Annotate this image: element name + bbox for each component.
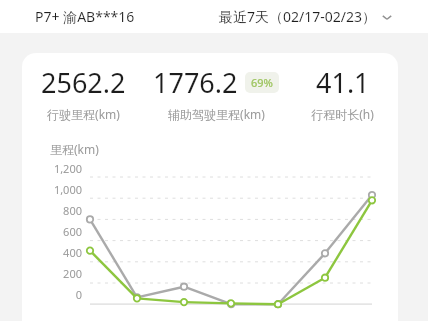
staticText: 400 bbox=[63, 245, 82, 260]
staticText: 1,000 bbox=[53, 182, 82, 197]
staticText: 里程(km) bbox=[50, 141, 99, 157]
staticText: 800 bbox=[63, 203, 82, 218]
button[interactable]: 1776.2 bbox=[145, 64, 287, 122]
staticText: 0 bbox=[75, 287, 82, 302]
staticText: 辅助驾驶里程(km) bbox=[168, 106, 265, 122]
button[interactable]: P7+ 渝AB***16 bbox=[35, 7, 135, 26]
staticText: 69% bbox=[251, 75, 273, 90]
button[interactable]: 41.1 bbox=[287, 64, 398, 122]
button[interactable]: 最近7天（02/17-02/23） bbox=[219, 7, 428, 26]
staticText: 41.1 bbox=[316, 64, 370, 101]
other: Change date range bbox=[380, 10, 394, 24]
staticText: P7+ 渝AB***16 bbox=[35, 7, 135, 26]
staticText: 2562.2 bbox=[41, 64, 126, 101]
staticText: 行驶里程(km) bbox=[47, 106, 120, 122]
staticText: 1,200 bbox=[53, 161, 82, 176]
staticText: 最近7天（02/17-02/23） bbox=[219, 7, 376, 26]
staticText: 200 bbox=[63, 266, 82, 281]
staticText: 600 bbox=[63, 224, 82, 239]
button[interactable]: 2562.2 bbox=[22, 64, 145, 122]
staticText: 行程时长(h) bbox=[311, 106, 374, 122]
staticText: 1776.2 bbox=[153, 64, 238, 101]
